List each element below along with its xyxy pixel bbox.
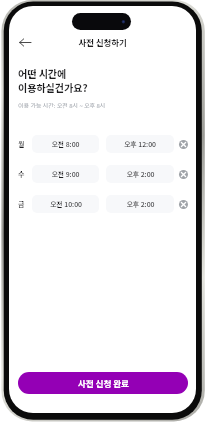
staticText: 이용하실건가요? xyxy=(18,80,88,94)
staticText: 오후 2:00 xyxy=(126,169,155,179)
button[interactable]: Remove time xyxy=(175,166,191,182)
staticText: 오전 8:00 xyxy=(51,139,80,149)
staticText: 오전 9:00 xyxy=(51,169,80,179)
button[interactable]: Remove time xyxy=(175,136,191,152)
staticText: 오전 10:00 xyxy=(50,199,82,209)
button[interactable]: 사전 신청 완료 xyxy=(18,372,188,394)
button[interactable]: 오전 9:00 xyxy=(32,165,99,183)
staticText: 오후 12:00 xyxy=(124,139,156,149)
button[interactable]: 오전 10:00 xyxy=(32,195,99,213)
button[interactable]: 오후 12:00 xyxy=(106,135,174,153)
button[interactable]: 오후 2:00 xyxy=(106,195,174,213)
staticText: 어떤 시간에 xyxy=(18,66,67,80)
button[interactable]: Remove time xyxy=(175,196,191,212)
staticText: 월 xyxy=(18,139,25,149)
staticText: 금 xyxy=(18,199,25,209)
button[interactable]: 오전 8:00 xyxy=(32,135,99,153)
staticText: 오후 2:00 xyxy=(126,199,155,209)
staticText: 이용 가능 시간: 오전 8시 ~ 오후 8시 xyxy=(18,101,106,110)
staticText: 수 xyxy=(18,169,25,179)
staticText: 사전 신청하기 xyxy=(9,36,196,48)
staticText: 사전 신청 완료 xyxy=(78,377,129,389)
button[interactable]: 오후 2:00 xyxy=(106,165,174,183)
button[interactable]: Back xyxy=(14,31,36,53)
other: Front camera xyxy=(72,13,131,30)
